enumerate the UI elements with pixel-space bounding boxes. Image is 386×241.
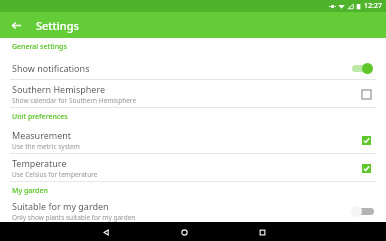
button[interactable]: Temperature [0,154,386,181]
button[interactable]: Show notifications toggle, on [350,60,376,76]
staticText: Use Celsius for temperature [12,170,98,179]
button[interactable]: Home [175,223,193,241]
button[interactable]: Measurement [0,126,386,153]
staticText: Unit preferences [12,112,68,122]
staticText: Measurement [12,129,72,141]
staticText: 12:27 [364,1,382,11]
staticText: Settings [36,18,79,33]
button[interactable]: Back [7,16,25,34]
staticText: Use the metric system [12,142,80,151]
staticText: Temperature [12,157,67,169]
staticText: Show notifications [12,62,90,74]
staticText: My garden [12,186,48,196]
staticText: Show calendar for Southern Hemisphere [12,96,137,105]
button[interactable]: Suitable for my garden [0,200,386,222]
button[interactable]: Southern Hemisphere [0,80,386,107]
button[interactable]: Checkbox, checked [356,158,376,178]
button[interactable]: Recent apps [253,223,271,241]
staticText: Southern Hemisphere [12,83,106,95]
staticText: Suitable for my garden [12,200,109,212]
staticText: General settings [12,42,67,52]
button[interactable]: Checkbox, checked [356,130,376,150]
button[interactable]: Back [97,223,115,241]
button[interactable]: Suitable for my garden toggle, off [350,203,376,219]
button[interactable]: Show notifications [0,56,386,79]
button[interactable]: Checkbox, unchecked [356,84,376,104]
staticText: Only show plants suitable for my garden [12,213,136,222]
